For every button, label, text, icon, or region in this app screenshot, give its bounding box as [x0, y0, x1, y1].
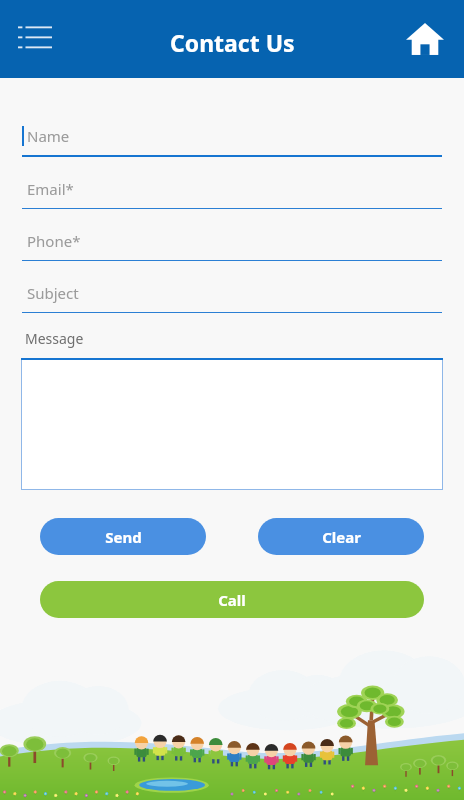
button[interactable]: Menu	[8, 12, 62, 66]
button[interactable]: Phone*	[22, 231, 442, 261]
staticText: Email*	[27, 179, 74, 199]
button[interactable]: Email*	[22, 179, 442, 209]
staticText: Message	[25, 329, 84, 348]
button[interactable]	[21, 358, 443, 490]
button[interactable]: Home	[398, 12, 452, 66]
staticText: Call	[218, 590, 246, 610]
button[interactable]: Send	[40, 518, 206, 555]
button[interactable]: Name	[22, 126, 442, 157]
button[interactable]: Subject	[22, 283, 442, 313]
staticText: Phone*	[27, 231, 81, 251]
button[interactable]: Call	[40, 581, 424, 618]
staticText: Send	[105, 527, 142, 547]
staticText: Subject	[27, 283, 79, 303]
staticText: Clear	[322, 527, 361, 547]
staticText: Name	[27, 126, 70, 146]
button[interactable]: Clear	[258, 518, 424, 555]
staticText: Contact Us	[170, 27, 295, 58]
